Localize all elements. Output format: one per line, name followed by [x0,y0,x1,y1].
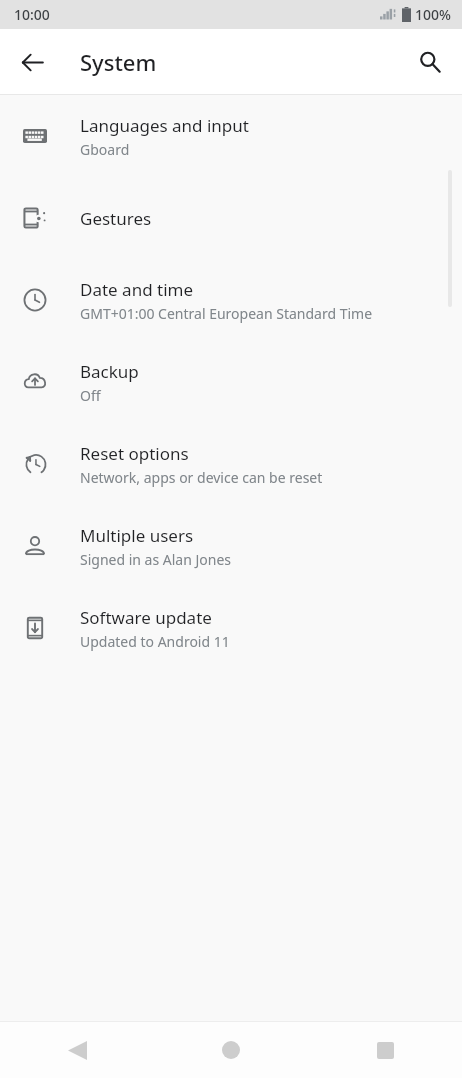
staticText: Gestures [80,207,152,230]
button[interactable]: Recent apps [308,1022,462,1078]
button[interactable]: Gestures [0,177,462,259]
button[interactable]: Date and time [0,259,462,341]
staticText: GMT+01:00 Central European Standard Time [80,304,373,323]
button[interactable]: Back [0,1022,154,1078]
staticText: 100% [415,5,451,24]
button[interactable]: Home [154,1022,308,1078]
staticText: Multiple users [80,524,194,547]
staticText: 10:00 [14,5,50,24]
button[interactable]: Backup [0,341,462,423]
staticText: Off [80,386,101,405]
staticText: Signed in as Alan Jones [80,550,232,569]
button[interactable]: Back [8,38,56,86]
staticText: Date and time [80,278,194,301]
staticText: Languages and input [80,114,249,137]
staticText: Software update [80,606,212,629]
staticText: Reset options [80,442,189,465]
button[interactable]: Reset options [0,423,462,505]
button[interactable]: Software update [0,587,462,669]
staticText: Backup [80,360,139,383]
staticText: System [80,47,157,77]
staticText: Updated to Android 11 [80,632,230,651]
button[interactable]: Multiple users [0,505,462,587]
button[interactable]: Search [406,38,454,86]
button[interactable]: Languages and input [0,95,462,177]
staticText: Gboard [80,140,130,159]
staticText: Network, apps or device can be reset [80,468,323,487]
